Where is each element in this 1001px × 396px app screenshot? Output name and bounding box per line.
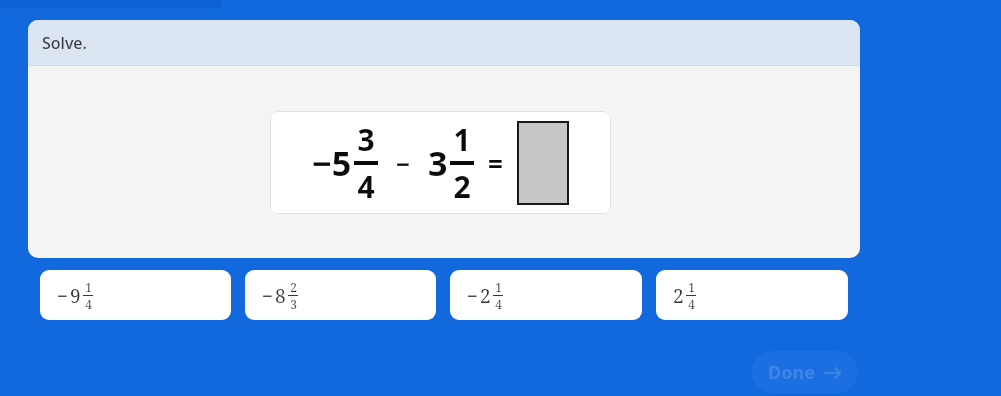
staticText: Done — [768, 360, 815, 385]
staticText: 1 — [688, 279, 695, 295]
staticText: − — [57, 283, 69, 309]
staticText: = — [488, 146, 503, 181]
button[interactable]: 2 — [656, 270, 848, 320]
button[interactable]: − — [450, 270, 642, 320]
staticText: − — [467, 283, 479, 309]
staticText: − — [396, 147, 410, 180]
staticText: 4 — [357, 166, 375, 207]
staticText: −5 — [312, 140, 352, 186]
staticText: 9 — [70, 283, 81, 309]
staticText: 3 — [428, 140, 448, 186]
button[interactable]: Answer input — [517, 121, 569, 205]
staticText: 2 — [673, 283, 684, 309]
staticText: − — [262, 283, 274, 309]
staticText: Solve. — [42, 32, 87, 54]
staticText: 1 — [495, 279, 502, 295]
staticText: 4 — [495, 296, 502, 312]
staticText: 3 — [290, 296, 297, 312]
staticText: 1 — [453, 119, 471, 160]
staticText: 2 — [290, 279, 297, 295]
staticText: 2 — [480, 283, 491, 309]
staticText: 4 — [688, 296, 695, 312]
staticText: 2 — [453, 166, 471, 207]
staticText: 1 — [85, 279, 92, 295]
staticText: 4 — [85, 296, 92, 312]
staticText: 3 — [357, 119, 375, 160]
button[interactable]: − — [40, 270, 231, 320]
button[interactable]: Done — [752, 351, 858, 393]
button[interactable]: − — [245, 270, 436, 320]
staticText: 8 — [275, 283, 286, 309]
